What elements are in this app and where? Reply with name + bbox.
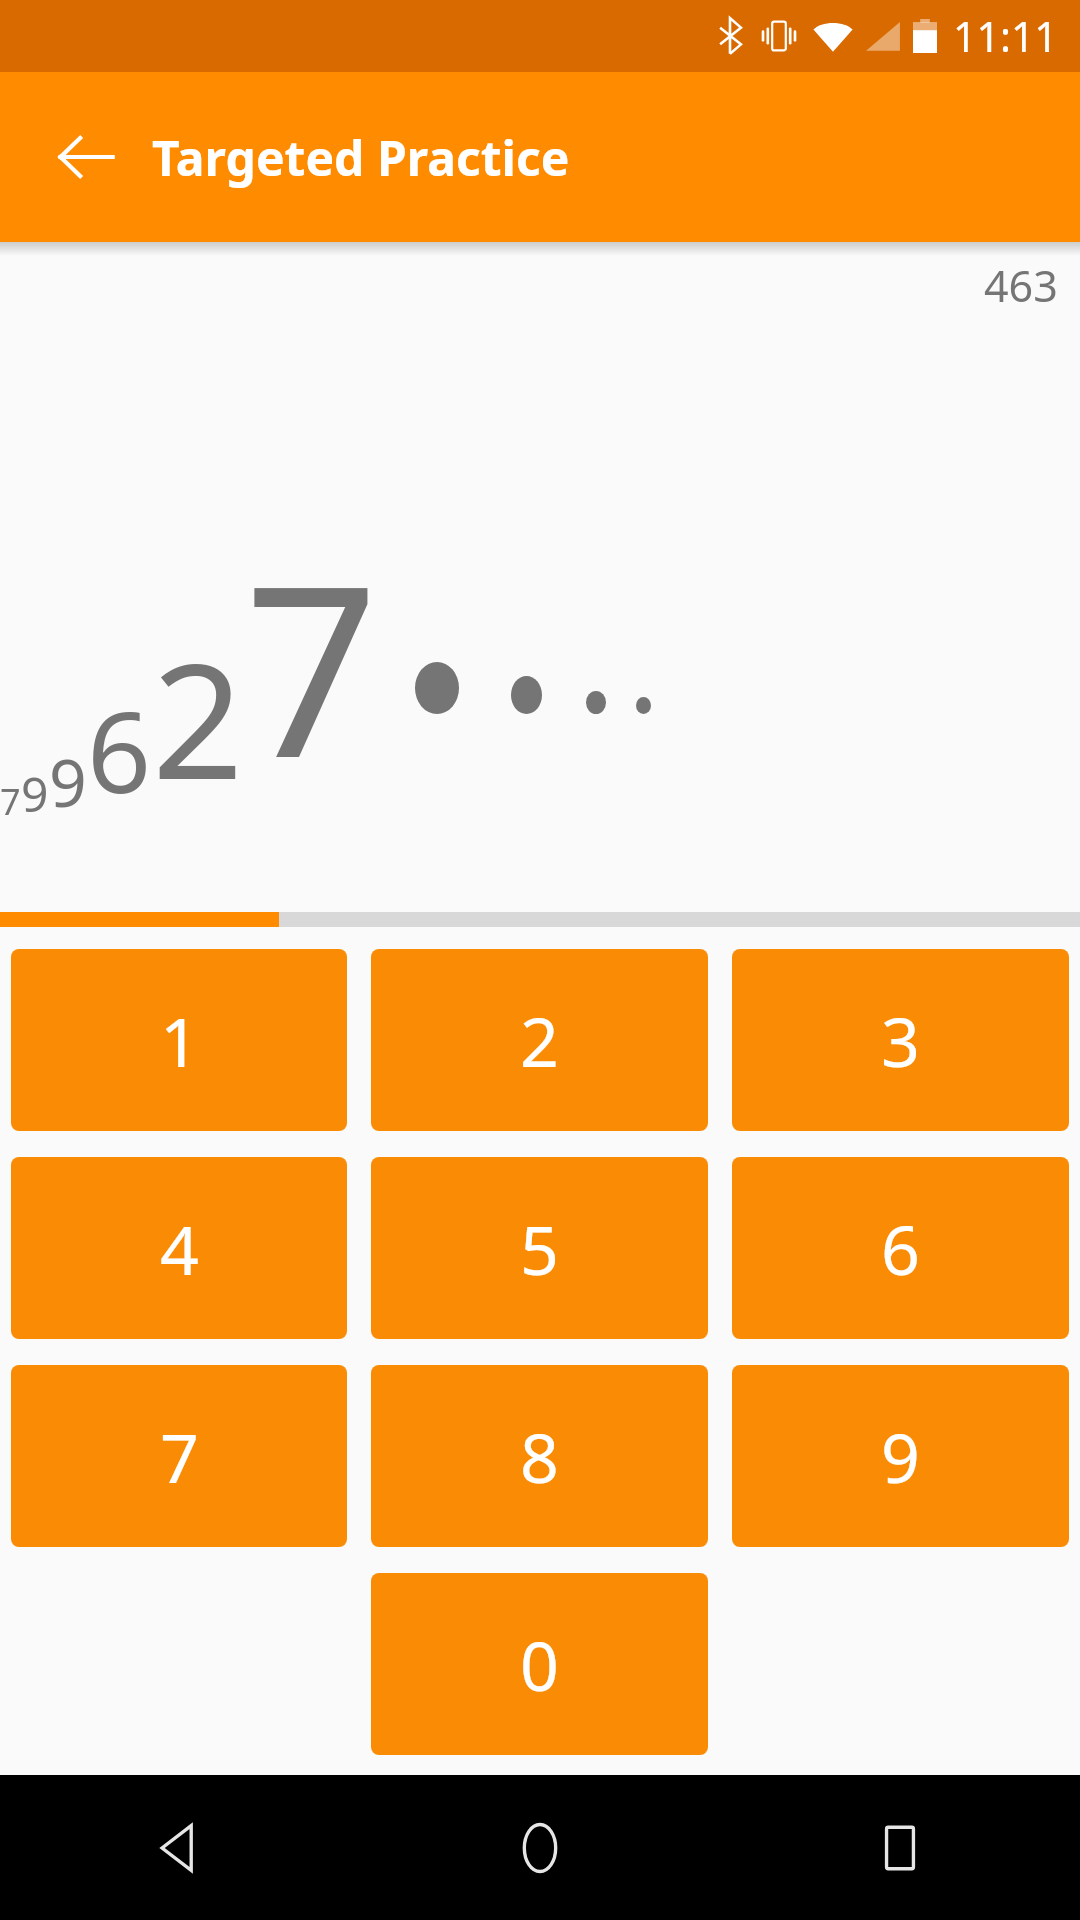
button[interactable]: 3 [732,949,1069,1131]
button[interactable]: Back [0,1775,360,1920]
staticText: 2 [520,994,559,1087]
staticText: 463 [984,256,1058,315]
button[interactable]: 8 [371,1365,708,1547]
staticText: 1 [160,994,199,1087]
staticText: 8 [520,1410,559,1503]
staticText: 5 [520,1202,559,1295]
button[interactable]: 7 [11,1365,347,1547]
button[interactable]: 9 [732,1365,1069,1547]
button[interactable]: 5 [371,1157,708,1339]
staticText: 6 [87,673,152,826]
button[interactable]: Back [38,109,134,205]
staticText: Targeted Practice [152,125,570,190]
staticText: 9 [21,761,49,826]
button[interactable]: 6 [732,1157,1069,1339]
staticText: 4 [160,1202,199,1295]
staticText: 7 [160,1410,199,1503]
button[interactable]: 0 [371,1573,708,1755]
staticText: 3 [881,994,920,1087]
staticText: 9 [49,736,87,826]
staticText: 0 [520,1618,559,1711]
button[interactable]: 2 [371,949,708,1131]
staticText: 7 [244,505,379,826]
staticText: 2 [152,608,244,826]
staticText: 6 [881,1202,920,1295]
staticText: 7 [0,777,21,826]
button[interactable]: Recents [720,1775,1080,1920]
button[interactable]: Home [360,1775,720,1920]
staticText: 9 [881,1410,920,1503]
button[interactable]: 4 [11,1157,347,1339]
staticText: 11:11 [953,8,1058,64]
button[interactable]: 1 [11,949,347,1131]
